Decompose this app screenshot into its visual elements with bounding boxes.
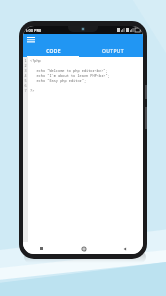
staticText: OUTPUT	[102, 48, 124, 55]
staticText: 3	[24, 68, 27, 73]
staticText: 4	[24, 73, 27, 78]
staticText: echo "Easy php editor";	[30, 78, 87, 83]
button[interactable]: Recent apps	[37, 244, 46, 253]
staticText: 5	[24, 78, 27, 83]
staticText: 2	[24, 63, 27, 68]
staticText: 1:00 PM	[25, 28, 41, 33]
button[interactable]: CODE	[23, 45, 83, 57]
button[interactable]: OUTPUT	[83, 45, 143, 57]
staticText: CODE	[46, 48, 61, 55]
staticText: <?php	[30, 58, 41, 63]
button[interactable]: Back	[120, 244, 129, 253]
button[interactable]: Home	[79, 244, 88, 253]
staticText: 1	[24, 58, 27, 63]
staticText: echo "I'm about to learn PHP<br>";	[30, 73, 110, 78]
staticText: 6	[24, 83, 27, 88]
staticText: 7	[24, 88, 27, 93]
staticText: echo "Welcome to php editor<br>";	[30, 68, 108, 73]
button[interactable]: Open navigation menu	[26, 35, 35, 44]
staticText: ?>	[30, 88, 35, 93]
